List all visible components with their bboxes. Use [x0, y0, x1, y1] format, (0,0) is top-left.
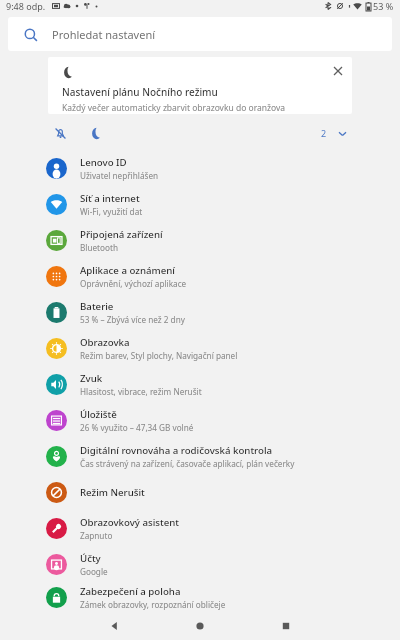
button[interactable]: Síť a internet [0, 186, 400, 222]
button[interactable]: Zpět [93, 612, 135, 640]
staticText: Uživatel nepřihlášen [80, 170, 159, 181]
staticText: Oprávnění, výchozí aplikace [80, 278, 187, 289]
button[interactable]: Zabezpečení a poloha [0, 582, 400, 612]
button[interactable]: Nastavení plánu Nočního režimu [48, 57, 352, 114]
staticText: Zvuk [80, 372, 103, 385]
button[interactable]: Nerušit [48, 121, 72, 145]
button[interactable]: Úložiště [0, 402, 400, 438]
staticText: 53 % [373, 0, 394, 12]
staticText: Účty [80, 552, 101, 565]
staticText: Síť a internet [80, 192, 140, 205]
staticText: Obrazovkový asistent [80, 516, 180, 529]
staticText: 26 % využito – 47,34 GB volné [80, 422, 194, 433]
staticText: Aplikace a oznámení [80, 264, 175, 277]
staticText: 2 [321, 127, 327, 139]
staticText: Každý večer automaticky zbarvit obrazovk… [62, 102, 286, 114]
button[interactable]: Aplikace a oznámení [0, 258, 400, 294]
button[interactable]: Zavřít [330, 63, 346, 79]
staticText: Zapnuto [80, 530, 113, 541]
button[interactable]: Připojená zařízení [0, 222, 400, 258]
staticText: 53 % – Zbývá více než 2 dny [80, 314, 185, 325]
button[interactable]: Obrazovka [0, 330, 400, 366]
button[interactable]: Noční režim [84, 121, 108, 145]
staticText: 9:48 odp. [6, 0, 46, 12]
button[interactable]: Lenovo ID [0, 150, 400, 186]
staticText: Zabezpečení a poloha [80, 585, 181, 598]
staticText: Google [80, 566, 108, 577]
button[interactable]: Prohledat nastavení [8, 17, 392, 51]
staticText: Zámek obrazovky, rozpoznání obličeje [80, 599, 226, 610]
staticText: Režim barev, Styl plochy, Navigační pane… [80, 350, 238, 361]
staticText: Digitální rovnováha a rodičovská kontrol… [80, 444, 273, 457]
staticText: Baterie [80, 300, 114, 313]
staticText: Připojená zařízení [80, 228, 163, 241]
button[interactable]: 2 [317, 127, 352, 139]
staticText: Hlasitost, vibrace, režim Nerušit [80, 386, 202, 397]
button[interactable]: Plocha [179, 612, 221, 640]
staticText: Režim Nerušit [80, 486, 145, 499]
button[interactable]: Zvuk [0, 366, 400, 402]
button[interactable]: Přehled [265, 612, 307, 640]
staticText: Wi-Fi, využití dat [80, 206, 143, 217]
button[interactable]: Obrazovkový asistent [0, 510, 400, 546]
staticText: Nastavení plánu Nočního režimu [62, 85, 218, 99]
staticText: Lenovo ID [80, 156, 127, 169]
staticText: Čas strávený na zařízení, časovače aplik… [80, 458, 295, 469]
button[interactable]: Baterie [0, 294, 400, 330]
staticText: Bluetooth [80, 242, 118, 253]
button[interactable]: Účty [0, 546, 400, 582]
staticText: Úložiště [80, 408, 117, 421]
button[interactable]: Režim Nerušit [0, 474, 400, 510]
button[interactable]: Digitální rovnováha a rodičovská kontrol… [0, 438, 400, 474]
staticText: Prohledat nastavení [52, 27, 156, 42]
staticText: Obrazovka [80, 336, 130, 349]
